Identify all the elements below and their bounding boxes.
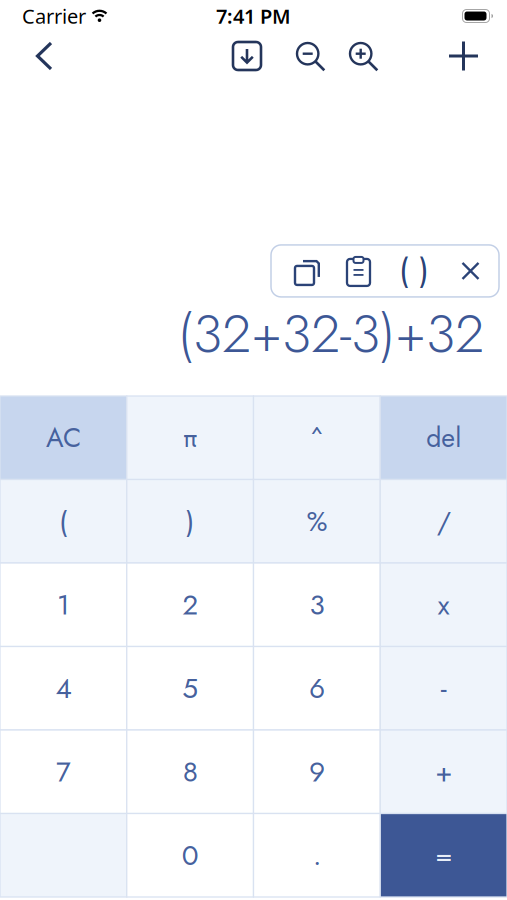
button[interactable]: Close [445,249,499,292]
button[interactable]: π [127,396,254,479]
button[interactable]: Copy [271,245,334,297]
staticText: + [435,751,452,792]
button[interactable]: / [380,479,507,563]
staticText: 9 [309,751,325,792]
staticText: 5 [182,668,198,708]
staticText: / [437,501,451,541]
button[interactable]: New calculation [439,41,507,70]
staticText: ( ) [399,248,429,294]
button[interactable]: 5 [127,646,254,730]
button[interactable]: Parentheses [383,248,445,294]
staticText: ( [59,501,68,541]
staticText: = [435,835,452,875]
staticText: 4 [55,668,71,708]
staticText: 7 [56,751,71,792]
staticText: AC [46,418,81,457]
button[interactable]: - [380,646,507,730]
button[interactable]: 2 [127,563,254,646]
button[interactable]: Paste [334,245,383,297]
button[interactable]: 0 [127,813,254,897]
button[interactable]: . [253,813,380,897]
staticText: . [313,835,321,875]
staticText: (32+32-3)+32 [178,295,484,372]
staticText: π [183,418,197,457]
button[interactable]: Zoom out [296,42,324,70]
staticText: ^ [310,418,324,457]
button[interactable]: x [380,563,507,646]
button[interactable]: ( [0,479,127,563]
staticText: - [441,668,447,708]
button[interactable]: + [380,730,507,813]
staticText: 8 [183,751,198,792]
staticText: 0 [182,835,199,875]
button[interactable]: 6 [253,646,380,730]
staticText: % [306,501,327,541]
staticText: Carrier [22,3,86,29]
button[interactable]: 1 [0,563,127,646]
button[interactable]: Back [0,41,62,70]
button[interactable]: 3 [253,563,380,646]
staticText: 7:41 PM [216,3,291,29]
staticText: 6 [309,668,325,708]
staticText: ) [186,501,195,541]
staticText: 3 [309,584,324,625]
button[interactable]: del [380,396,507,479]
staticText: del [426,418,461,457]
button[interactable]: 4 [0,646,127,730]
staticText: 1 [57,584,70,625]
staticText: x [438,584,450,625]
button[interactable]: % [253,479,380,563]
button[interactable]: 9 [253,730,380,813]
button[interactable]: Save [233,42,261,70]
button[interactable]: 8 [127,730,254,813]
button[interactable]: Zoom in [349,42,377,70]
button[interactable]: ^ [253,396,380,479]
staticText: 2 [182,584,198,625]
button[interactable]: = [380,813,507,897]
button[interactable]: ) [127,479,254,563]
button[interactable]: 7 [0,730,127,813]
button[interactable]: AC [0,396,127,479]
